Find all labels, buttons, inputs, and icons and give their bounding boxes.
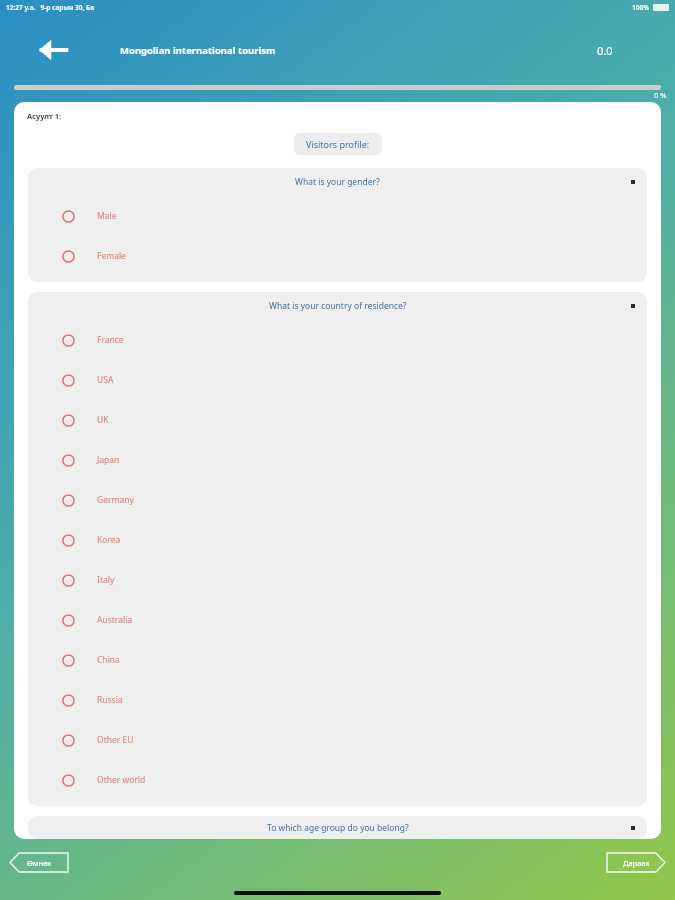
button[interactable]: Visitors profile: [294,133,382,155]
staticText: Female [97,250,126,262]
button[interactable]: France [28,320,647,360]
button[interactable]: Korea [28,520,647,560]
staticText: Germany [97,494,134,506]
button[interactable]: Australia [28,600,647,640]
staticText: Асуулт 1: [27,111,62,121]
button[interactable]: Russia [28,680,647,720]
button[interactable]: Japan [28,440,647,480]
staticText: Өмнөх [27,858,52,868]
staticText: 12:27 у.а. 9-р сарын 30, Ба [6,3,95,12]
staticText: Male [97,210,117,222]
button[interactable]: USA [28,360,647,400]
button[interactable]: UK [28,400,647,440]
staticText: Australia [97,614,133,626]
button[interactable]: What is your country of residence? [28,292,647,320]
staticText: Other EU [97,734,134,746]
staticText: 100% [632,3,650,12]
staticText: UK [97,414,109,426]
staticText: USA [97,374,114,386]
staticText: France [97,334,124,346]
staticText: China [97,654,120,666]
button[interactable]: Дараах [607,853,665,872]
button[interactable]: Italy [28,560,647,600]
button[interactable]: Germany [28,480,647,520]
staticText: What is your country of residence? [269,300,407,312]
staticText: Italy [97,574,115,586]
button[interactable]: China [28,640,647,680]
button[interactable]: Other EU [28,720,647,760]
staticText: Дараах [623,858,650,868]
staticText: Other world [97,774,146,786]
staticText: Japan [97,454,120,466]
staticText: Visitors profile: [306,138,370,150]
staticText: 0 % [654,90,667,100]
button[interactable]: To which age group do you belong? [28,816,647,839]
button[interactable]: What is your gender? [28,168,647,196]
staticText: 0.0 [597,43,613,58]
button[interactable]: Female [28,236,647,276]
staticText: Mongolian international tourism [120,44,276,57]
button[interactable]: Өмнөх [10,853,68,872]
staticText: What is your gender? [295,176,380,188]
button[interactable]: Other world [28,760,647,800]
button[interactable]: Male [28,196,647,236]
button[interactable]: Back [32,28,76,72]
staticText: To which age group do you belong? [267,822,409,834]
staticText: Korea [97,534,121,546]
staticText: Russia [97,694,123,706]
